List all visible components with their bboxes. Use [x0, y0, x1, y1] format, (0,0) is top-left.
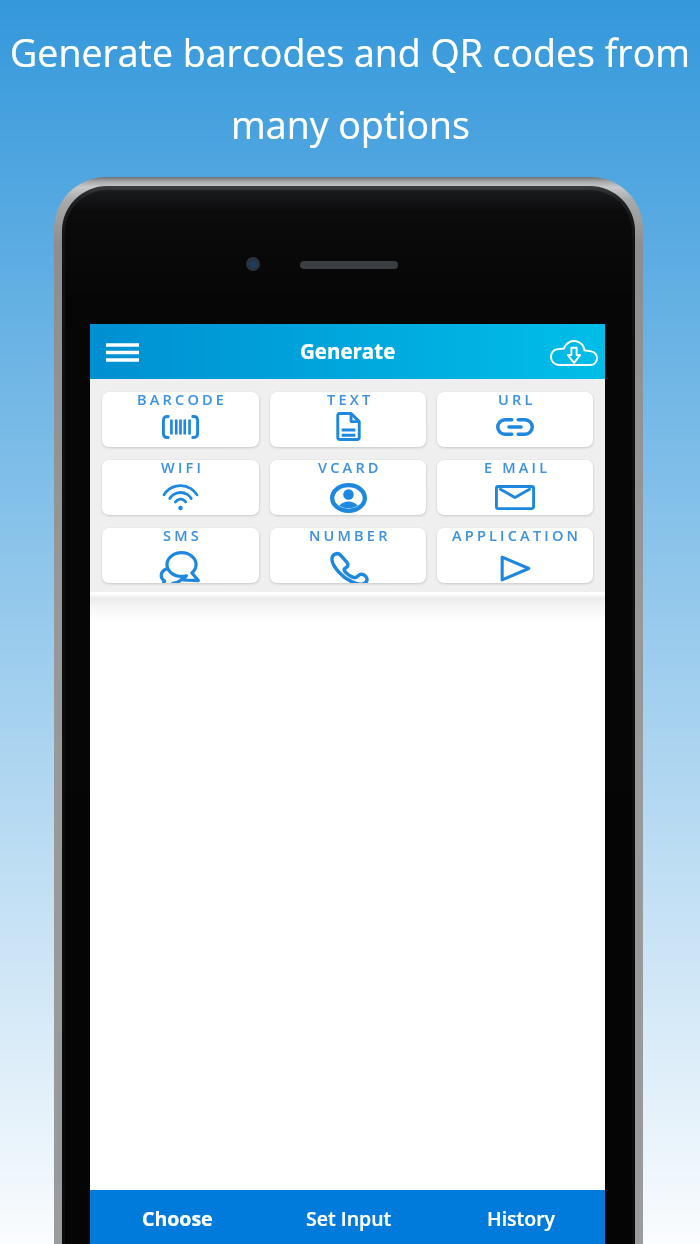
button[interactable]: Download: [549, 328, 597, 376]
staticText: Generate barcodes and QR codes from: [10, 27, 690, 78]
staticText: Choose: [142, 1205, 213, 1232]
staticText: VCARD: [318, 460, 382, 478]
staticText: History: [487, 1205, 556, 1232]
staticText: TEXT: [327, 392, 374, 410]
button[interactable]: Set Input: [261, 1190, 433, 1244]
staticText: BARCODE: [137, 392, 228, 410]
button[interactable]: VCARD: [270, 460, 426, 515]
button[interactable]: Open navigation menu: [98, 330, 142, 374]
staticText: URL: [498, 392, 536, 410]
staticText: SMS: [163, 528, 202, 546]
button[interactable]: TEXT: [270, 392, 426, 447]
button[interactable]: E MAIL: [437, 460, 593, 515]
button[interactable]: SMS: [102, 528, 259, 583]
button[interactable]: Choose: [90, 1190, 261, 1244]
button[interactable]: APPLICATION: [437, 528, 593, 583]
staticText: E MAIL: [484, 460, 551, 478]
staticText: APPLICATION: [452, 528, 582, 546]
button[interactable]: NUMBER: [270, 528, 426, 583]
staticText: many options: [231, 99, 470, 150]
button[interactable]: URL: [437, 392, 593, 447]
staticText: Set Input: [306, 1205, 392, 1232]
button[interactable]: BARCODE: [102, 392, 259, 447]
staticText: Generate: [300, 337, 396, 365]
button[interactable]: History: [433, 1190, 605, 1244]
button[interactable]: WIFI: [102, 460, 259, 515]
staticText: WIFI: [161, 460, 205, 478]
staticText: NUMBER: [309, 528, 391, 546]
